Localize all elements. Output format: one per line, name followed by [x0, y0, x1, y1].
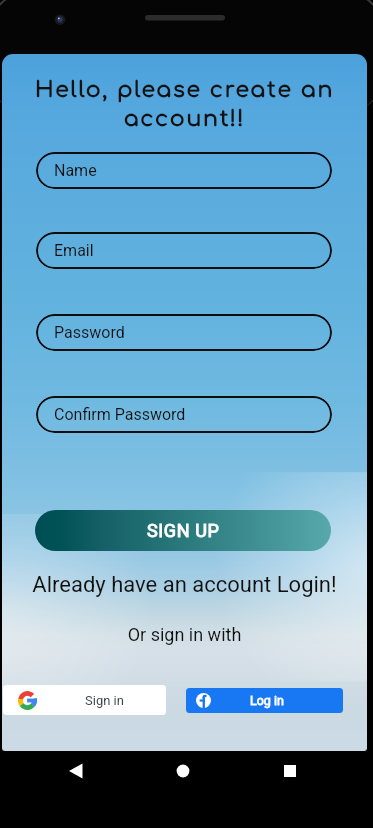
button[interactable]: Name [36, 152, 332, 189]
staticText: Email [54, 241, 94, 260]
staticText: Hello, please create an account!! [2, 78, 367, 131]
button[interactable]: Confirm Password [36, 396, 332, 433]
button[interactable]: Back [40, 751, 112, 791]
staticText: Sign in [85, 693, 124, 708]
staticText: Password [54, 323, 125, 342]
button[interactable]: Already have an account Login! [2, 572, 367, 598]
staticText: Name [54, 161, 97, 180]
staticText: Or sign in with [2, 624, 367, 645]
staticText: Confirm Password [54, 405, 186, 424]
staticText: SIGN UP [147, 520, 220, 541]
staticText: Log in [250, 693, 284, 708]
button[interactable]: Email [36, 232, 332, 269]
button[interactable]: Home [147, 751, 219, 791]
button[interactable]: Log in [186, 688, 343, 713]
button[interactable]: Recent apps [254, 751, 326, 791]
button[interactable]: Sign in [3, 685, 166, 715]
button[interactable]: Password [36, 314, 332, 351]
button[interactable]: SIGN UP [35, 510, 331, 551]
